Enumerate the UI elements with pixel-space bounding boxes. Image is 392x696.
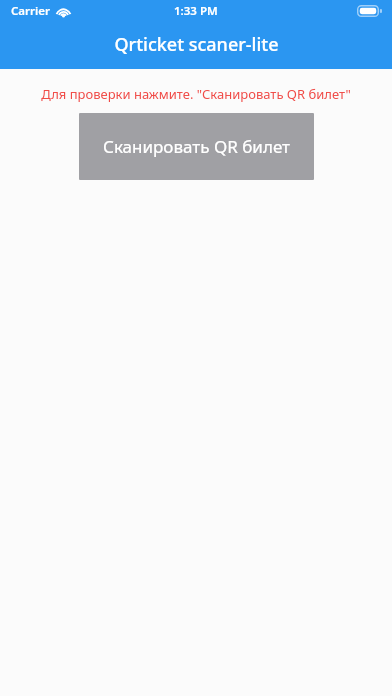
staticText: Qrticket scaner-lite <box>114 32 279 57</box>
staticText: Сканировать QR билет <box>103 135 290 158</box>
staticText: Для проверки нажмите. "Сканировать QR би… <box>41 85 351 103</box>
staticText: 1:33 PM <box>174 3 218 19</box>
button[interactable]: Сканировать QR билет <box>79 113 314 180</box>
staticText: Carrier <box>11 3 51 19</box>
